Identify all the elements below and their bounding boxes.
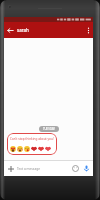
button[interactable]: Emoji	[70, 163, 81, 174]
button[interactable]: Back	[4, 22, 17, 38]
staticText: sarah	[17, 27, 29, 33]
button[interactable]: Can't stop thinking about you!	[10, 137, 54, 152]
staticText: Can't stop thinking about you!	[10, 137, 54, 141]
button[interactable]: More options	[84, 22, 93, 38]
button[interactable]: Add attachment	[5, 163, 16, 174]
staticText: Text a message	[17, 167, 40, 171]
button[interactable]: TUESDAY	[43, 127, 55, 131]
button[interactable]: Voice message	[81, 163, 92, 174]
staticText: TUESDAY	[43, 127, 55, 131]
